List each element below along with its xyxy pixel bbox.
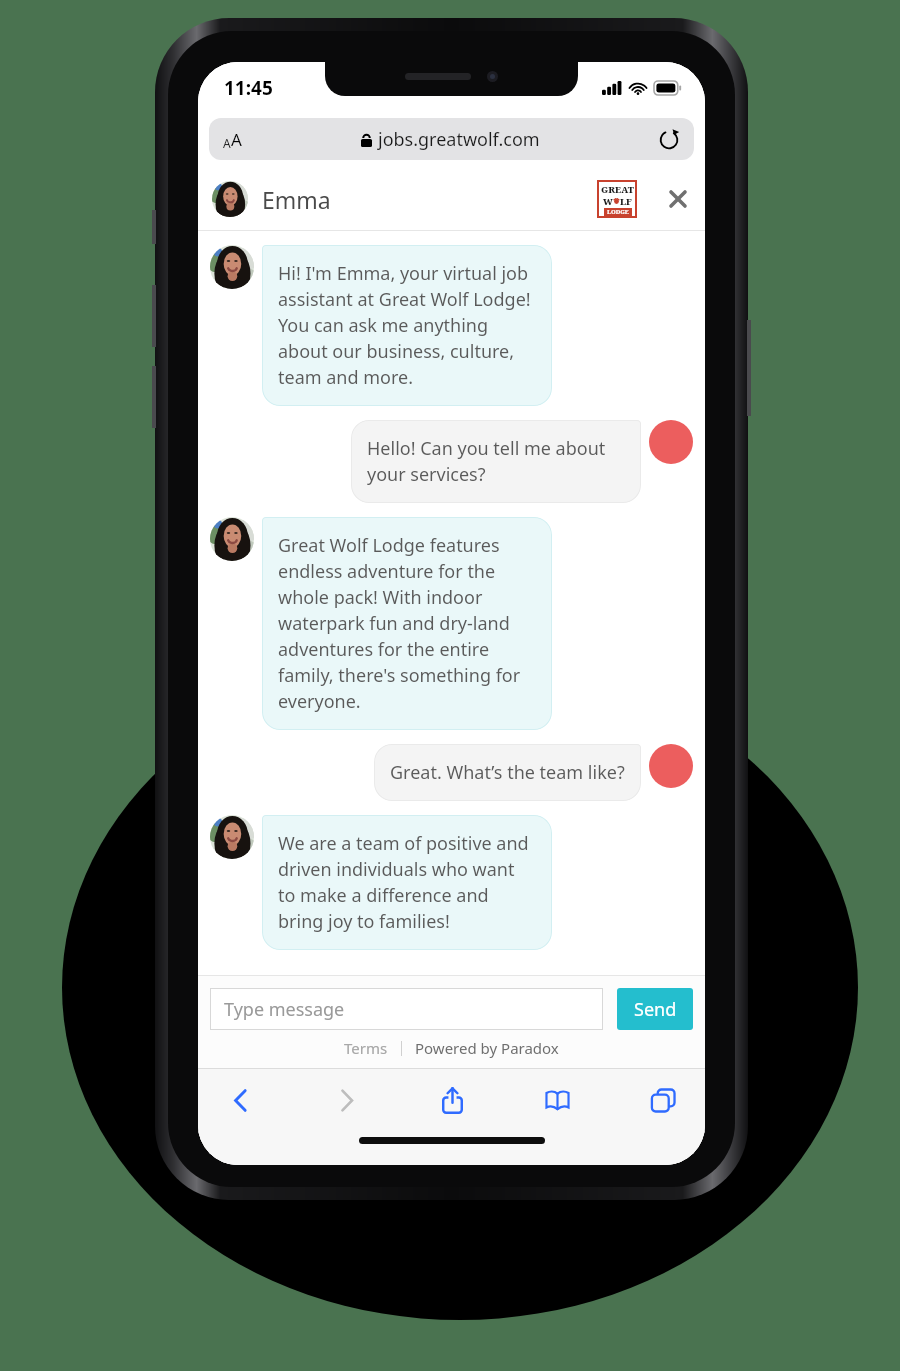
staticText: Type message: [224, 997, 345, 1022]
button[interactable]: A: [209, 118, 694, 160]
button[interactable]: Great Wolf Lodge features endless advent…: [210, 517, 693, 730]
button[interactable]: Hi! I'm Emma, your virtual job assistant…: [210, 245, 693, 406]
staticText: W: [603, 195, 613, 207]
button[interactable]: Send: [617, 988, 693, 1030]
staticText: A: [231, 128, 242, 151]
staticText: GREAT: [601, 183, 634, 195]
button[interactable]: Back: [218, 1078, 262, 1122]
button[interactable]: Forward: [324, 1078, 368, 1122]
button[interactable]: Share: [430, 1078, 474, 1122]
button[interactable]: Type message: [210, 988, 603, 1030]
staticText: Great. What’s the team like?: [390, 760, 625, 785]
staticText: Send: [634, 997, 677, 1022]
button[interactable]: Great. What’s the team like?: [210, 744, 693, 801]
staticText: jobs.greatwolf.com: [378, 127, 540, 152]
staticText: Great Wolf Lodge features endless advent…: [278, 533, 536, 714]
staticText: LODGE: [607, 208, 629, 216]
staticText: LF: [620, 195, 632, 207]
button[interactable]: Hello! Can you tell me about your servic…: [210, 420, 693, 503]
button[interactable]: Close chat: [665, 186, 691, 212]
staticText: A: [223, 135, 231, 151]
staticText: We are a team of positive and driven ind…: [278, 831, 536, 934]
button[interactable]: Bookmarks: [535, 1078, 579, 1122]
button[interactable]: Tabs: [641, 1078, 685, 1122]
button[interactable]: We are a team of positive and driven ind…: [210, 815, 693, 950]
staticText: Hello! Can you tell me about your servic…: [367, 436, 625, 487]
staticText: Hi! I'm Emma, your virtual job assistant…: [278, 261, 536, 390]
button[interactable]: Terms: [344, 1038, 388, 1058]
staticText: 11:45: [224, 75, 273, 101]
button[interactable]: Reload page: [658, 128, 680, 150]
button[interactable]: Great Wolf Lodge: [599, 182, 635, 216]
button[interactable]: Powered by Paradox: [415, 1038, 559, 1058]
staticText: Emma: [262, 184, 331, 215]
